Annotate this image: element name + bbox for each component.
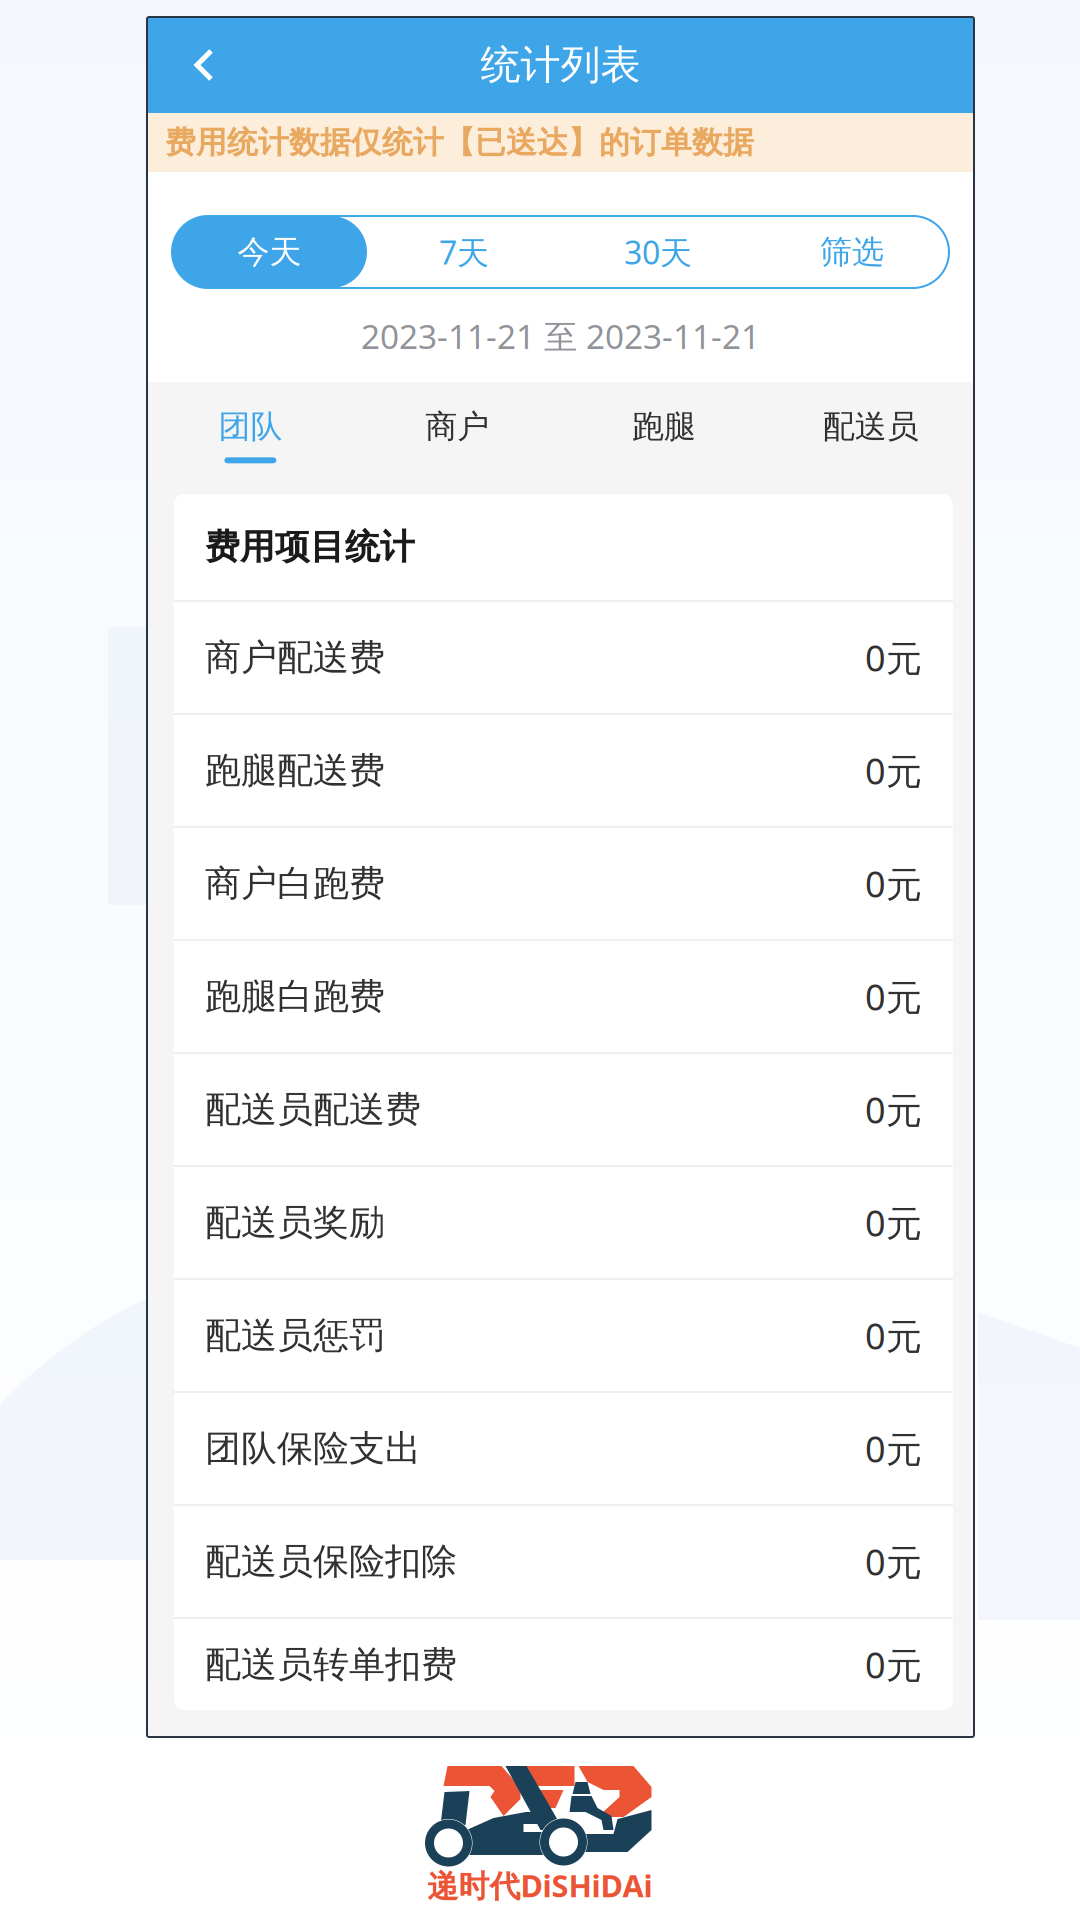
staticText: 配送员配送费 bbox=[205, 1087, 421, 1132]
staticText: 0元 bbox=[865, 634, 922, 681]
button[interactable]: 返回 bbox=[147, 17, 261, 113]
staticText: 0元 bbox=[865, 973, 922, 1020]
staticText: 0元 bbox=[865, 747, 922, 794]
staticText: 0元 bbox=[865, 1312, 922, 1359]
staticText: 递时代DiSHiDAi bbox=[427, 1865, 652, 1906]
staticText: 2023-11-21 至 2023-11-21 bbox=[361, 314, 760, 358]
staticText: 0元 bbox=[865, 1199, 922, 1246]
staticText: 商户白跑费 bbox=[205, 861, 385, 906]
staticText: 跑腿白跑费 bbox=[205, 974, 385, 1019]
button[interactable]: 跑腿 bbox=[560, 382, 767, 480]
staticText: 配送员 bbox=[823, 407, 919, 446]
staticText: 费用项目统计 bbox=[205, 526, 415, 568]
staticText: 0元 bbox=[865, 1538, 922, 1585]
staticText: 团队保险支出 bbox=[205, 1426, 421, 1471]
button[interactable]: 筛选 bbox=[755, 216, 949, 288]
staticText: 跑腿配送费 bbox=[205, 748, 385, 793]
staticText: 筛选 bbox=[820, 232, 884, 272]
button[interactable]: 7天 bbox=[367, 216, 561, 288]
button[interactable]: 30天 bbox=[561, 216, 755, 288]
staticText: 费用统计数据仅统计【已送达】的订单数据 bbox=[165, 124, 754, 161]
staticText: 0元 bbox=[865, 1641, 922, 1688]
staticText: 0元 bbox=[865, 860, 922, 907]
button[interactable]: 今天 bbox=[172, 216, 367, 288]
staticText: 商户配送费 bbox=[205, 635, 385, 680]
staticText: 今天 bbox=[237, 232, 301, 272]
button[interactable]: 商户 bbox=[354, 382, 561, 480]
button[interactable]: 团队 bbox=[147, 382, 354, 480]
staticText: 配送员奖励 bbox=[205, 1200, 385, 1245]
staticText: 7天 bbox=[439, 231, 489, 273]
staticText: 团队 bbox=[218, 407, 282, 446]
staticText: 30天 bbox=[624, 231, 692, 273]
staticText: 跑腿 bbox=[632, 407, 696, 446]
staticText: 配送员惩罚 bbox=[205, 1313, 385, 1358]
button[interactable]: 配送员 bbox=[767, 382, 974, 480]
staticText: 0元 bbox=[865, 1425, 922, 1472]
staticText: 配送员转单扣费 bbox=[205, 1642, 457, 1687]
staticText: 配送员保险扣除 bbox=[205, 1539, 457, 1584]
staticText: 统计列表 bbox=[480, 40, 640, 89]
staticText: 0元 bbox=[865, 1086, 922, 1133]
staticText: 商户 bbox=[425, 407, 489, 446]
